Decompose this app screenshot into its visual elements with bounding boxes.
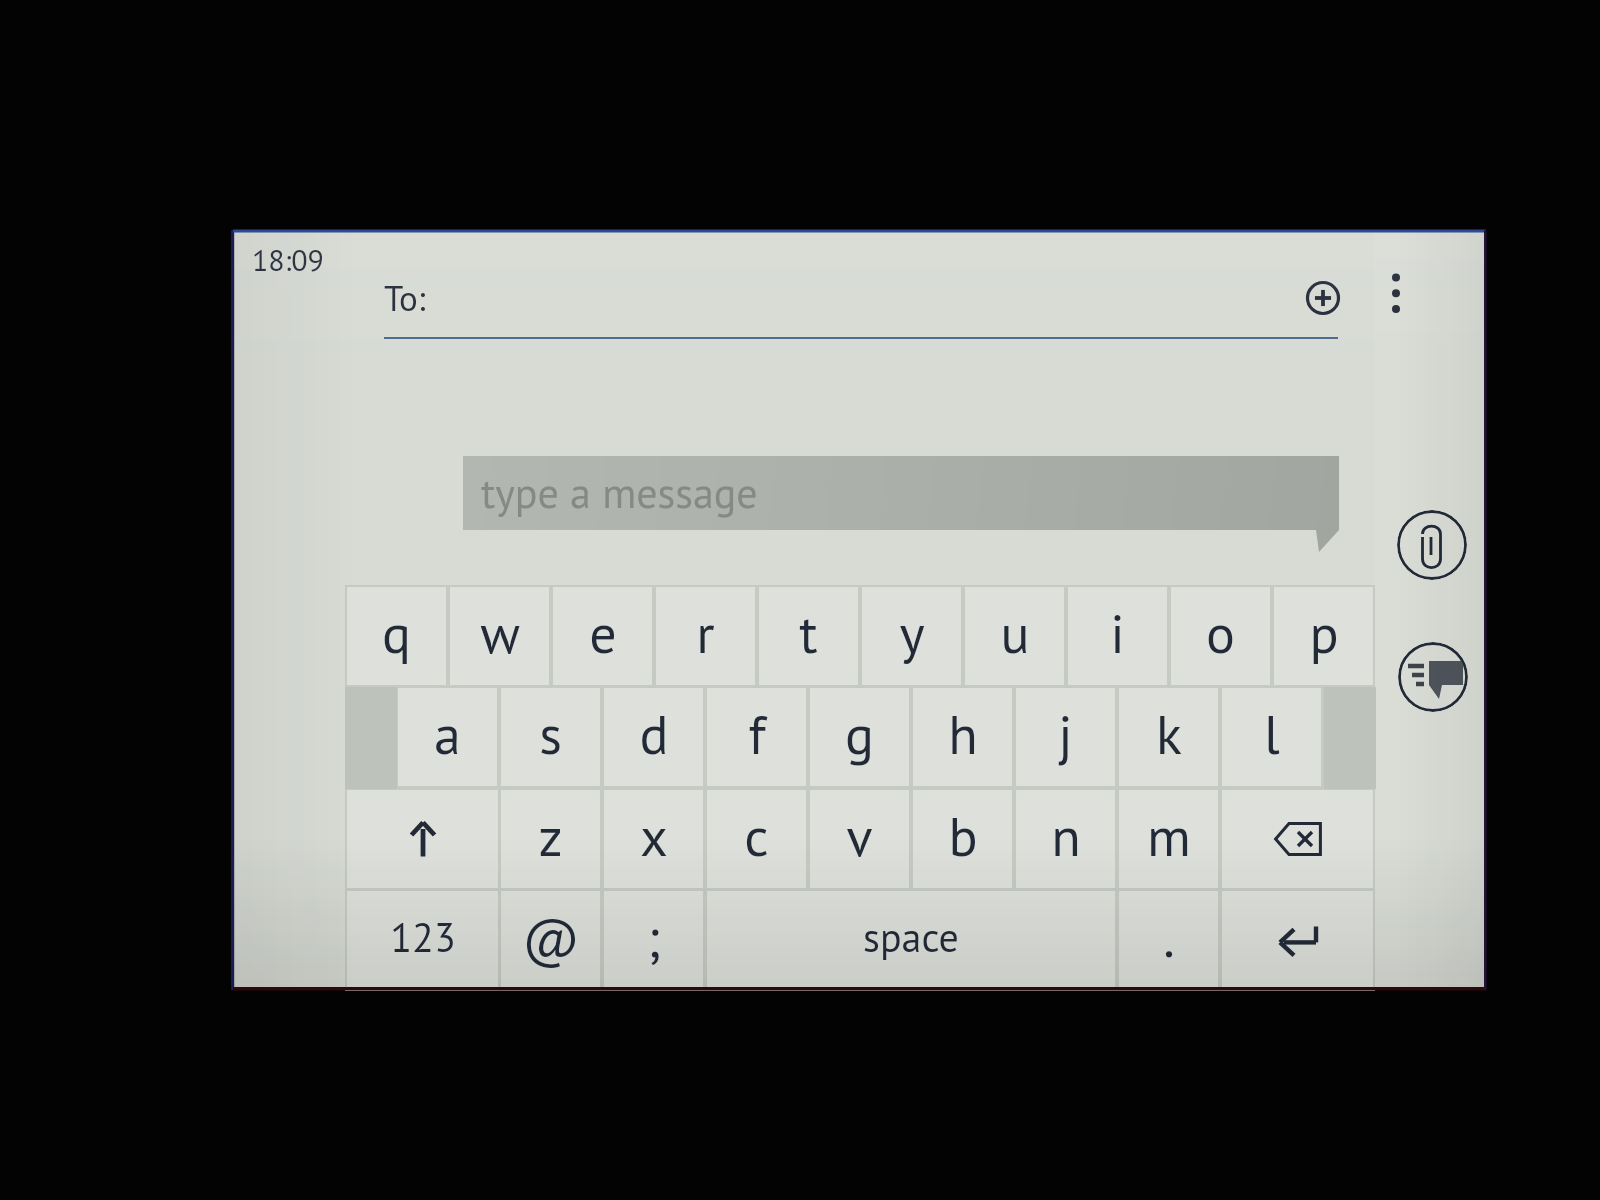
button[interactable] [1222,790,1373,888]
staticText: y [899,598,925,668]
button[interactable]: f [707,688,806,786]
button[interactable] [1222,891,1373,989]
staticText: e [589,598,617,668]
staticText: u [1000,598,1030,668]
button[interactable]: c [707,790,806,888]
staticText: z [538,801,563,871]
staticText: m [1147,801,1191,871]
staticText: c [744,801,769,871]
staticText: a [434,699,461,769]
staticText: o [1206,598,1235,668]
staticText: n [1051,801,1081,871]
button[interactable]: g [810,688,909,786]
staticText: 18:09 [252,240,324,279]
staticText: b [948,801,978,871]
button[interactable]: w [450,587,549,685]
staticText: q [382,598,411,668]
button[interactable]: y [862,587,961,685]
staticText: h [948,699,978,769]
button[interactable]: a [398,688,497,786]
button[interactable]: b [913,790,1012,888]
button[interactable]: Attach file [1397,510,1467,580]
button[interactable]: x [604,790,703,888]
button[interactable]: d [604,688,703,786]
staticText: k [1156,699,1182,769]
button[interactable]: @ [501,891,600,989]
staticText: p [1309,598,1339,668]
button[interactable]: n [1016,790,1115,888]
button[interactable]: u [965,587,1064,685]
staticText: g [845,699,874,769]
staticText: To: [384,275,426,320]
button[interactable] [347,790,498,888]
button[interactable]: s [501,688,600,786]
staticText: space [863,911,959,963]
button[interactable]: space [707,891,1115,989]
staticText: f [748,699,766,769]
staticText: x [640,801,668,871]
staticText: d [639,699,669,769]
button[interactable]: l [1222,688,1321,786]
button[interactable]: m [1119,790,1218,888]
button[interactable]: Send message [1398,642,1468,712]
staticText: type a message [481,465,758,519]
staticText: s [539,699,562,769]
staticText: t [799,598,818,668]
button[interactable]: o [1171,587,1270,685]
button[interactable]: z [501,790,600,888]
staticText: v [846,801,873,871]
staticText: r [696,598,715,668]
button[interactable]: ; [604,891,703,989]
button[interactable]: More options [1376,266,1416,326]
button[interactable]: e [553,587,652,685]
button[interactable]: j [1016,688,1115,786]
staticText: @ [522,902,580,972]
button[interactable]: p [1274,587,1373,685]
staticText: 123 [390,911,456,963]
staticText: . [1163,902,1175,972]
button[interactable]: q [347,587,446,685]
button[interactable]: k [1119,688,1218,786]
button[interactable]: i [1068,587,1167,685]
button[interactable]: r [656,587,755,685]
button[interactable]: t [759,587,858,685]
staticText: i [1110,598,1125,668]
staticText: ; [647,902,661,972]
staticText: w [480,598,520,668]
button[interactable]: Add recipient [1306,281,1340,315]
staticText: j [1058,699,1073,769]
button[interactable]: v [810,790,909,888]
staticText: l [1264,699,1280,769]
button[interactable]: h [913,688,1012,786]
button[interactable]: . [1119,891,1218,989]
button[interactable]: 123 [347,891,498,989]
